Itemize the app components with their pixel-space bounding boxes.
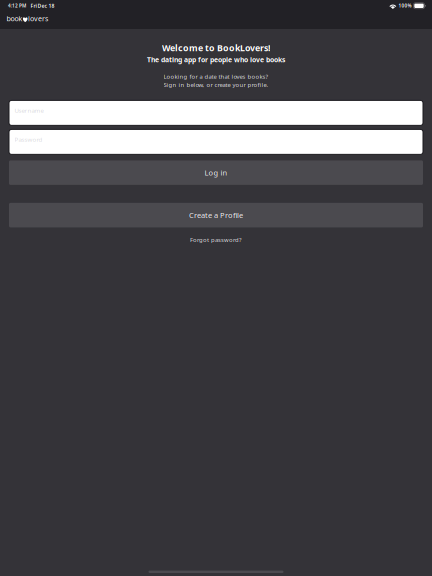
staticText: book	[6, 14, 22, 23]
button[interactable]: Username	[9, 100, 423, 125]
button[interactable]: BookLovers home	[5, 13, 49, 24]
button[interactable]: Password	[9, 129, 423, 154]
staticText: 100%	[398, 3, 411, 9]
staticText: Username	[14, 106, 43, 114]
staticText: Welcome to BookLovers!	[162, 42, 270, 54]
button[interactable]: Create a Profile	[9, 203, 423, 227]
staticText: The dating app for people who love books	[147, 55, 285, 64]
staticText: Sign in below, or create your profile.	[163, 81, 268, 89]
staticText: 4:12 PM	[8, 3, 26, 9]
staticText: Looking for a date that loves books?	[163, 72, 268, 80]
button[interactable]: Forgot password?	[182, 234, 250, 246]
staticText: Password	[14, 135, 42, 143]
staticText: Create a Profile	[189, 210, 243, 220]
staticText: Fri Dec 18	[30, 2, 54, 9]
button[interactable]: Log in	[9, 160, 423, 185]
staticText: lovers	[28, 14, 48, 23]
staticText: Forgot password?	[190, 236, 242, 244]
staticText: Log in	[204, 168, 227, 178]
